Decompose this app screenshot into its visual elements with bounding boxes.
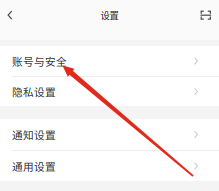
- button[interactable]: 通用设置: [0, 151, 219, 181]
- button[interactable]: 通知设置: [0, 119, 219, 150]
- staticText: 通知设置: [12, 127, 56, 142]
- button[interactable]: 账号与安全: [0, 46, 219, 76]
- staticText: 通用设置: [12, 158, 56, 174]
- button[interactable]: Back: [2, 6, 18, 24]
- button[interactable]: Scan: [196, 6, 216, 24]
- staticText: 账号与安全: [12, 53, 67, 69]
- button[interactable]: 隐私设置: [0, 77, 219, 106]
- staticText: 隐私设置: [12, 84, 56, 99]
- staticText: 设置: [100, 8, 118, 22]
